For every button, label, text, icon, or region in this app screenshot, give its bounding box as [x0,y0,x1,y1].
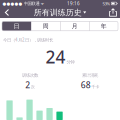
staticText: ᯤ [39,1,44,6]
staticText: 月 [71,22,77,30]
staticText: 周 [42,22,48,30]
staticText: 分钟 [66,59,74,65]
button[interactable]: 分享 [106,7,120,18]
staticText: 训练次数 [22,73,38,78]
button[interactable]: 月 [60,21,89,31]
staticText: 2 [25,79,30,91]
staticText: 53% [102,1,110,6]
staticText: 千卡 [91,84,99,89]
staticText: 次 [31,84,35,89]
staticText: 19:16 [67,0,80,7]
staticText: ●●●●● 中国联通 [2,1,39,6]
staticText: 所有训练历史 [34,7,82,18]
button[interactable]: 周 [31,21,60,31]
staticText: 68 [81,79,91,91]
button[interactable]: 返回 [0,7,14,18]
staticText: 累计消耗 [82,73,98,78]
staticText: 日 [13,22,19,30]
staticText: 今日（4月2日），训练时长 [3,37,53,43]
button[interactable]: 年 [89,21,118,31]
staticText: 24 [46,45,66,69]
staticText: 年 [100,22,106,30]
button[interactable]: 日 [2,21,31,31]
